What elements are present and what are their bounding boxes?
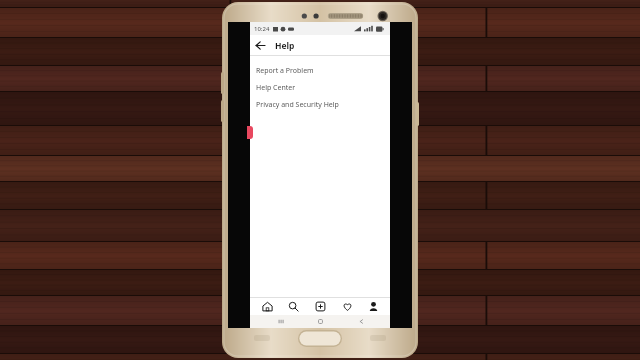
staticText: 10:24 [254,25,270,33]
button[interactable]: Privacy and Security Help [250,96,390,113]
button[interactable]: Report a Problem [250,62,390,79]
button[interactable]: Back [350,315,372,328]
button[interactable]: Back [250,35,271,56]
staticText: Help [275,40,295,52]
button[interactable]: Home [257,297,277,315]
staticText: Privacy and Security Help [256,100,339,110]
button[interactable]: Recents [269,315,291,328]
button[interactable]: Activity [337,297,357,315]
button[interactable]: Home [309,315,331,328]
button[interactable]: Help Center [250,79,390,96]
staticText: Report a Problem [256,66,314,76]
staticText: Help Center [256,83,296,93]
button[interactable]: Add post [310,297,330,315]
button[interactable]: Search [283,297,303,315]
button[interactable]: Profile [363,297,383,315]
